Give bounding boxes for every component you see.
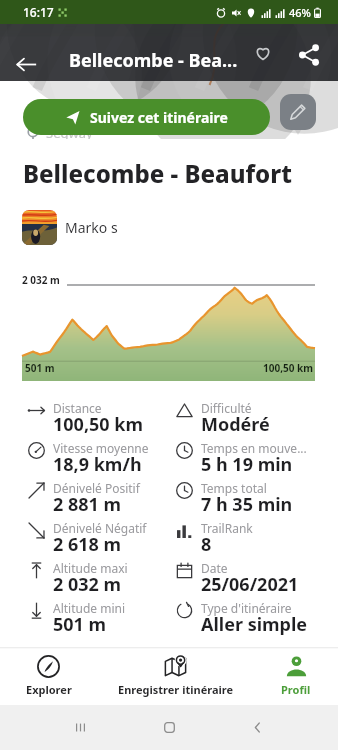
staticText: 2 618 m	[53, 532, 122, 557]
staticText: 16:17	[23, 4, 54, 20]
staticText: Dénivelé Positif	[53, 480, 173, 496]
staticText: Type d'itinéraire	[201, 600, 338, 616]
button[interactable]: Suivez cet itinéraire	[23, 99, 270, 135]
staticText: Date	[201, 560, 338, 576]
button[interactable]: Explorer	[0, 647, 97, 705]
staticText: Altitude mini	[53, 600, 173, 616]
staticText: 8	[201, 532, 212, 557]
staticText: Distance	[53, 400, 173, 416]
staticText: Suivez cet itinéraire	[90, 108, 228, 127]
button[interactable]: Enregistrer itinéraire	[97, 647, 254, 705]
staticText: 18,9 km/h	[53, 452, 142, 477]
staticText: Difficulté	[201, 400, 338, 416]
staticText: Marko s	[65, 218, 118, 237]
staticText: 100,50 km	[263, 361, 313, 375]
button[interactable]: Profil	[254, 647, 338, 705]
staticText: Bellecombe - Bea...	[69, 48, 239, 73]
staticText: 501 m	[25, 361, 55, 375]
button[interactable]: Back	[6, 44, 47, 85]
staticText: 5 h 19 min	[201, 452, 293, 477]
staticText: 7 h 35 min	[201, 492, 293, 517]
staticText: Vitesse moyenne	[53, 440, 173, 456]
staticText: Temps en mouve...	[201, 440, 338, 456]
button[interactable]: Share	[288, 34, 329, 75]
staticText: Bellecombe - Beaufort	[23, 157, 292, 190]
staticText: Modéré	[201, 412, 270, 437]
staticText: 25/06/2021	[201, 572, 299, 597]
staticText: 2 881 m	[53, 492, 122, 517]
staticText: Explorer	[26, 682, 72, 697]
staticText: 100,50 km	[53, 412, 143, 437]
button[interactable]: Favorite	[242, 32, 283, 73]
staticText: 2 032 m	[22, 273, 60, 287]
staticText: TrailRank	[201, 520, 338, 536]
staticText: 501 m	[53, 612, 107, 637]
button[interactable]: Edit	[280, 94, 316, 130]
staticText: 2 032 m	[53, 572, 122, 597]
staticText: Dénivelé Négatif	[53, 520, 173, 536]
staticText: Enregistrer itinéraire	[118, 682, 234, 697]
staticText: Aller simple	[201, 612, 308, 637]
staticText: Temps total	[201, 480, 338, 496]
staticText: Profil	[281, 682, 311, 697]
staticText: Altitude maxi	[53, 560, 173, 576]
staticText: 46%	[289, 5, 311, 20]
staticText: Segway	[46, 124, 93, 142]
